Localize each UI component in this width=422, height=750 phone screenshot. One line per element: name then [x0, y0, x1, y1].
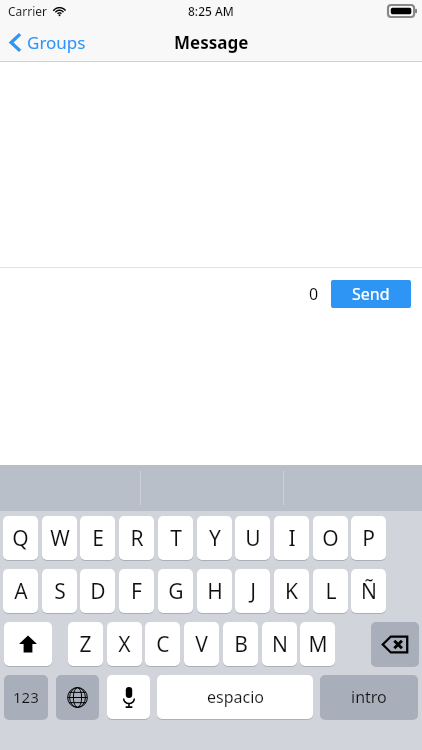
button[interactable]: B	[223, 622, 258, 666]
button[interactable]: intro	[320, 675, 418, 719]
button[interactable]: Change keyboard	[56, 675, 99, 719]
button[interactable]: T	[158, 516, 193, 560]
staticText: Carrier	[8, 3, 48, 19]
staticText: D	[90, 577, 106, 606]
button[interactable]: Backspace	[371, 622, 419, 666]
staticText: T	[170, 524, 182, 553]
button[interactable]: E	[80, 516, 115, 560]
button[interactable]: D	[80, 569, 115, 613]
staticText: 8:25 AM	[188, 3, 234, 19]
staticText: P	[362, 524, 375, 553]
staticText: V	[195, 630, 208, 659]
button[interactable]: W	[42, 516, 77, 560]
staticText: J	[250, 577, 256, 606]
button[interactable]: O	[313, 516, 348, 560]
staticText: M	[308, 630, 328, 659]
button[interactable]: S	[42, 569, 77, 613]
staticText: Send	[352, 283, 390, 305]
staticText: X	[118, 630, 131, 659]
button[interactable]: G	[158, 569, 193, 613]
staticText: F	[131, 577, 142, 606]
staticText: Z	[79, 630, 92, 659]
staticText: A	[14, 577, 28, 606]
button[interactable]: Z	[68, 622, 103, 666]
button[interactable]: Groups	[0, 27, 96, 58]
button[interactable]: H	[197, 569, 232, 613]
button[interactable]: Q	[3, 516, 38, 560]
staticText: C	[156, 630, 170, 659]
button[interactable]: Ñ	[351, 569, 386, 613]
staticText: K	[285, 577, 298, 606]
button[interactable]: F	[119, 569, 154, 613]
button[interactable]: M	[300, 622, 335, 666]
button[interactable]: J	[235, 569, 270, 613]
staticText: 0	[309, 283, 319, 305]
staticText: Ñ	[361, 577, 377, 606]
button[interactable]: C	[145, 622, 180, 666]
button[interactable]: Y	[197, 516, 232, 560]
button[interactable]: espacio	[157, 675, 313, 719]
staticText: Q	[12, 524, 29, 553]
staticText: H	[207, 577, 223, 606]
staticText: espacio	[207, 686, 264, 708]
staticText: intro	[351, 686, 387, 708]
staticText: Y	[209, 524, 221, 553]
button[interactable]: L	[313, 569, 348, 613]
button[interactable]: R	[119, 516, 154, 560]
staticText: E	[92, 524, 104, 553]
button[interactable]: Send	[331, 280, 411, 308]
staticText: G	[168, 577, 184, 606]
staticText: U	[245, 524, 261, 553]
staticText: Groups	[27, 31, 86, 54]
button[interactable]: X	[107, 622, 142, 666]
button[interactable]: U	[235, 516, 270, 560]
staticText: O	[322, 524, 339, 553]
button[interactable]: 123	[4, 675, 48, 719]
staticText: 123	[13, 687, 39, 707]
staticText: N	[272, 630, 288, 659]
button[interactable]: K	[274, 569, 309, 613]
button[interactable]: P	[351, 516, 386, 560]
staticText: L	[325, 577, 337, 606]
staticText: Message	[174, 31, 249, 54]
staticText: S	[54, 577, 66, 606]
button[interactable]: V	[184, 622, 219, 666]
button[interactable]: N	[262, 622, 297, 666]
staticText: I	[288, 524, 296, 553]
button[interactable]: Dictate	[107, 675, 150, 719]
staticText: W	[50, 524, 70, 553]
button[interactable]: A	[3, 569, 38, 613]
staticText: B	[234, 630, 248, 659]
button[interactable]: I	[274, 516, 309, 560]
button[interactable]: Shift	[4, 622, 52, 666]
staticText: R	[130, 524, 144, 553]
